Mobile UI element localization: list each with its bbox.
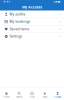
button[interactable]: Trips bbox=[26, 90, 38, 98]
staticText: Inbox bbox=[42, 95, 47, 98]
staticText: 9:41 bbox=[3, 0, 9, 3]
staticText: Settings bbox=[9, 34, 22, 38]
button[interactable]: Saved items bbox=[0, 25, 64, 32]
staticText: My profile bbox=[9, 12, 25, 16]
staticText: My Account bbox=[22, 5, 42, 9]
button[interactable]: Search bbox=[13, 90, 26, 98]
staticText: My bookings bbox=[9, 20, 30, 24]
button[interactable]: My bookings bbox=[0, 18, 64, 25]
staticText: Account bbox=[54, 95, 62, 98]
button[interactable]: Account bbox=[51, 90, 64, 98]
staticText: Saved items bbox=[9, 27, 29, 31]
button[interactable]: Inbox bbox=[38, 90, 51, 98]
staticText: Search bbox=[16, 95, 22, 98]
button[interactable]: My profile bbox=[0, 11, 64, 18]
staticText: Trips bbox=[29, 95, 34, 98]
button[interactable]: Home bbox=[0, 90, 13, 98]
staticText: Home bbox=[3, 95, 9, 98]
button[interactable]: Settings bbox=[0, 33, 64, 40]
